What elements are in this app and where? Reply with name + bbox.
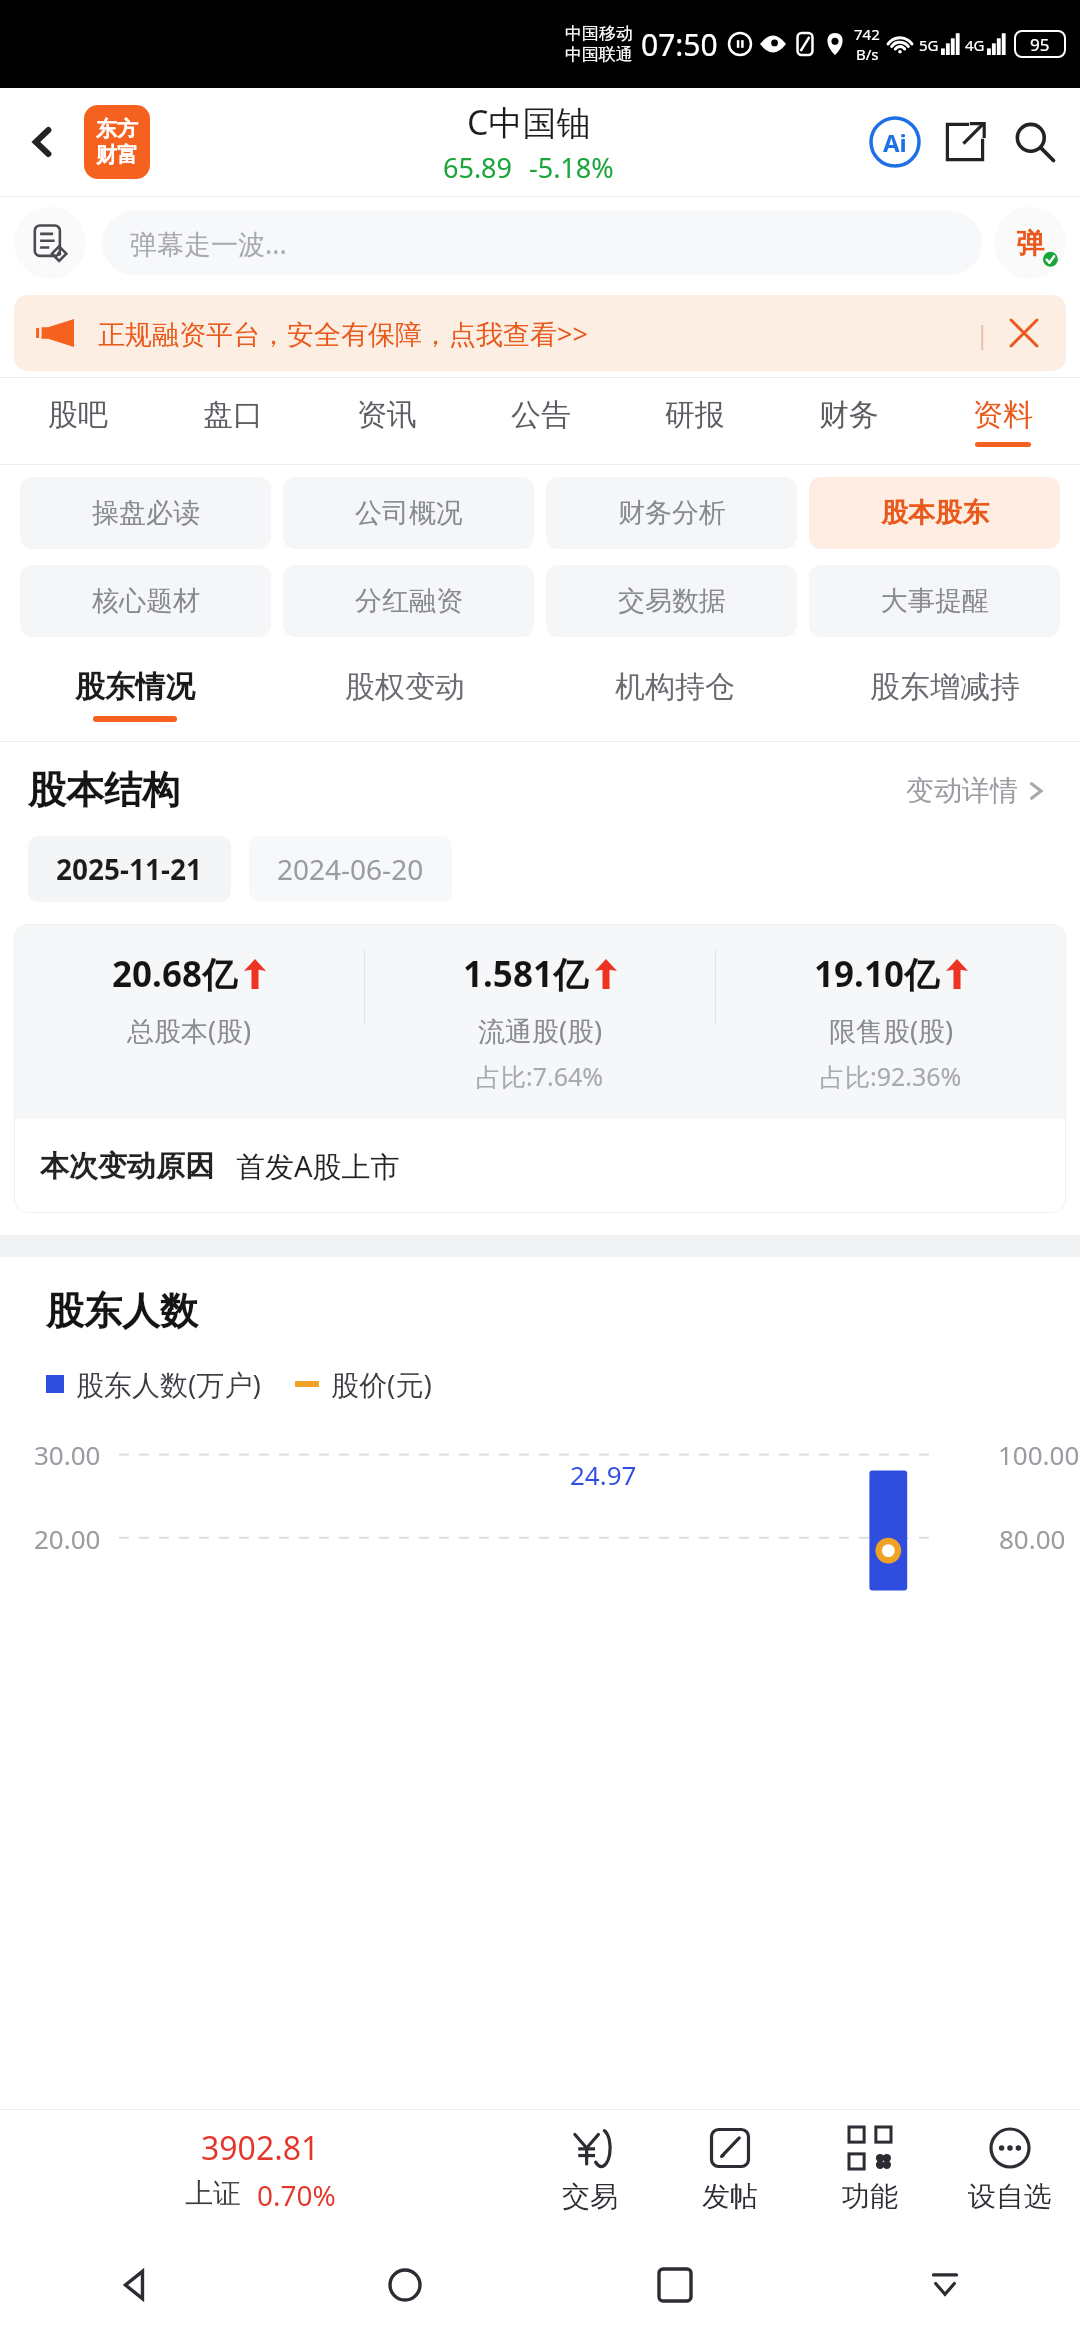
button[interactable]: Close xyxy=(1004,313,1044,353)
staticText: 中国移动 xyxy=(565,23,633,44)
staticText: 变动详情 xyxy=(906,773,1018,808)
button[interactable]: 功能 xyxy=(800,2110,940,2230)
button[interactable]: 股本股东 xyxy=(809,477,1060,549)
button[interactable]: 股权变动 xyxy=(270,649,540,741)
staticText: 0.70% xyxy=(257,2176,336,2214)
staticText: 本次变动原因 xyxy=(40,1148,214,1185)
staticText: 核心题材 xyxy=(92,584,200,618)
staticText: 发帖 xyxy=(702,2179,758,2214)
staticText: 限售股(股) xyxy=(829,1012,954,1049)
staticText: 4G xyxy=(965,35,985,55)
staticText: 07:50 xyxy=(641,24,718,65)
staticText: 股东人数(万户) xyxy=(76,1365,261,1403)
button[interactable]: 财务 xyxy=(772,378,926,464)
staticText: 上证 xyxy=(185,2176,241,2211)
button[interactable]: 股吧 xyxy=(0,378,155,464)
button[interactable]: Recents xyxy=(540,2230,810,2340)
button[interactable]: 资料 xyxy=(926,378,1080,464)
staticText: 20.68亿 xyxy=(112,950,237,998)
button[interactable]: AI xyxy=(866,113,924,171)
staticText: 2025-11-21 xyxy=(56,850,203,888)
button[interactable]: 机构持仓 xyxy=(540,649,810,741)
button[interactable]: Back xyxy=(0,2230,270,2340)
button[interactable]: 股东增减持 xyxy=(810,649,1080,741)
staticText: 正规融资平台，安全有保障，点我查看>> xyxy=(98,315,588,352)
button[interactable]: 盘口 xyxy=(155,378,310,464)
staticText: 股本股东 xyxy=(881,496,989,530)
button[interactable]: 操盘必读 xyxy=(20,477,271,549)
staticText: 总股本(股) xyxy=(127,1012,252,1049)
button[interactable]: Home xyxy=(270,2230,540,2340)
button[interactable]: Back xyxy=(12,111,74,173)
button[interactable]: Search xyxy=(1006,113,1064,171)
staticText: 742 xyxy=(854,24,880,44)
button[interactable]: 财务分析 xyxy=(546,477,797,549)
staticText: 3902.81 xyxy=(201,2126,320,2170)
staticText: -5.18% xyxy=(529,149,614,186)
staticText: 5G xyxy=(919,35,939,55)
staticText: 操盘必读 xyxy=(92,496,200,530)
button[interactable]: 弹幕走一波... xyxy=(102,211,982,275)
staticText: 股东情况 xyxy=(75,668,195,706)
button[interactable]: 2024-06-20 xyxy=(249,836,452,902)
button[interactable]: 公司概况 xyxy=(283,477,534,549)
staticText: 30.00 xyxy=(34,1437,101,1472)
staticText: Ai xyxy=(883,126,907,159)
staticText: 股东人数 xyxy=(46,1287,198,1335)
staticText: 大事提醒 xyxy=(881,584,989,618)
button[interactable]: 3902.81 xyxy=(0,2110,520,2230)
button[interactable]: 股东情况 xyxy=(0,649,270,741)
staticText: 2024-06-20 xyxy=(277,850,424,888)
staticText: 资料 xyxy=(973,396,1033,434)
staticText: 弹幕走一波... xyxy=(130,225,287,262)
button[interactable]: Notes xyxy=(14,207,86,279)
button[interactable]: 资讯 xyxy=(310,378,464,464)
staticText: 股东增减持 xyxy=(870,668,1020,706)
button[interactable]: 公告 xyxy=(464,378,618,464)
staticText: 资讯 xyxy=(357,396,417,434)
button[interactable]: 交易数据 xyxy=(546,565,797,637)
staticText: 19.10亿 xyxy=(814,950,939,998)
button[interactable]: 设自选 xyxy=(940,2110,1080,2230)
button[interactable]: Send danmu xyxy=(994,207,1066,279)
staticText: 弹 xyxy=(1016,226,1044,261)
staticText: 研报 xyxy=(665,396,725,434)
staticText: 盘口 xyxy=(203,396,263,434)
button[interactable]: Share xyxy=(936,113,994,171)
staticText: 交易数据 xyxy=(618,584,726,618)
button[interactable]: 分红融资 xyxy=(283,565,534,637)
staticText: 中国联通 xyxy=(565,44,633,65)
button[interactable]: 大事提醒 xyxy=(809,565,1060,637)
staticText: 流通股(股) xyxy=(478,1012,603,1049)
staticText: 24.97 xyxy=(570,1457,637,1492)
staticText: 东方 xyxy=(96,116,138,142)
button[interactable]: 正规融资平台，安全有保障，点我查看>> xyxy=(14,295,1066,371)
staticText: 股价(元) xyxy=(331,1365,432,1403)
staticText: 65.89 xyxy=(443,149,513,186)
staticText: 股权变动 xyxy=(345,668,465,706)
staticText: 财富 xyxy=(96,142,138,168)
button[interactable]: 变动详情 xyxy=(900,767,1052,814)
staticText: 机构持仓 xyxy=(615,668,735,706)
staticText: | xyxy=(975,316,990,351)
button[interactable]: 发帖 xyxy=(660,2110,800,2230)
staticText: 占比:92.36% xyxy=(820,1059,962,1093)
button[interactable]: 研报 xyxy=(618,378,772,464)
staticText: 公司概况 xyxy=(355,496,463,530)
staticText: 功能 xyxy=(842,2179,898,2214)
staticText: 分红融资 xyxy=(355,584,463,618)
staticText: 95 xyxy=(1030,33,1050,56)
staticText: 设自选 xyxy=(968,2179,1052,2214)
button[interactable]: 东方财富 xyxy=(84,105,150,179)
staticText: C中国铀 xyxy=(467,99,591,145)
staticText: 100.00 xyxy=(998,1437,1080,1472)
staticText: 公告 xyxy=(511,396,571,434)
staticText: 1.581亿 xyxy=(463,950,588,998)
button[interactable]: 交易 xyxy=(520,2110,660,2230)
button[interactable]: Download xyxy=(810,2230,1080,2340)
staticText: 交易 xyxy=(562,2179,618,2214)
button[interactable]: 核心题材 xyxy=(20,565,271,637)
staticText: 首发A股上市 xyxy=(236,1146,400,1186)
button[interactable]: 2025-11-21 xyxy=(28,836,231,902)
staticText: 20.00 xyxy=(34,1521,101,1556)
